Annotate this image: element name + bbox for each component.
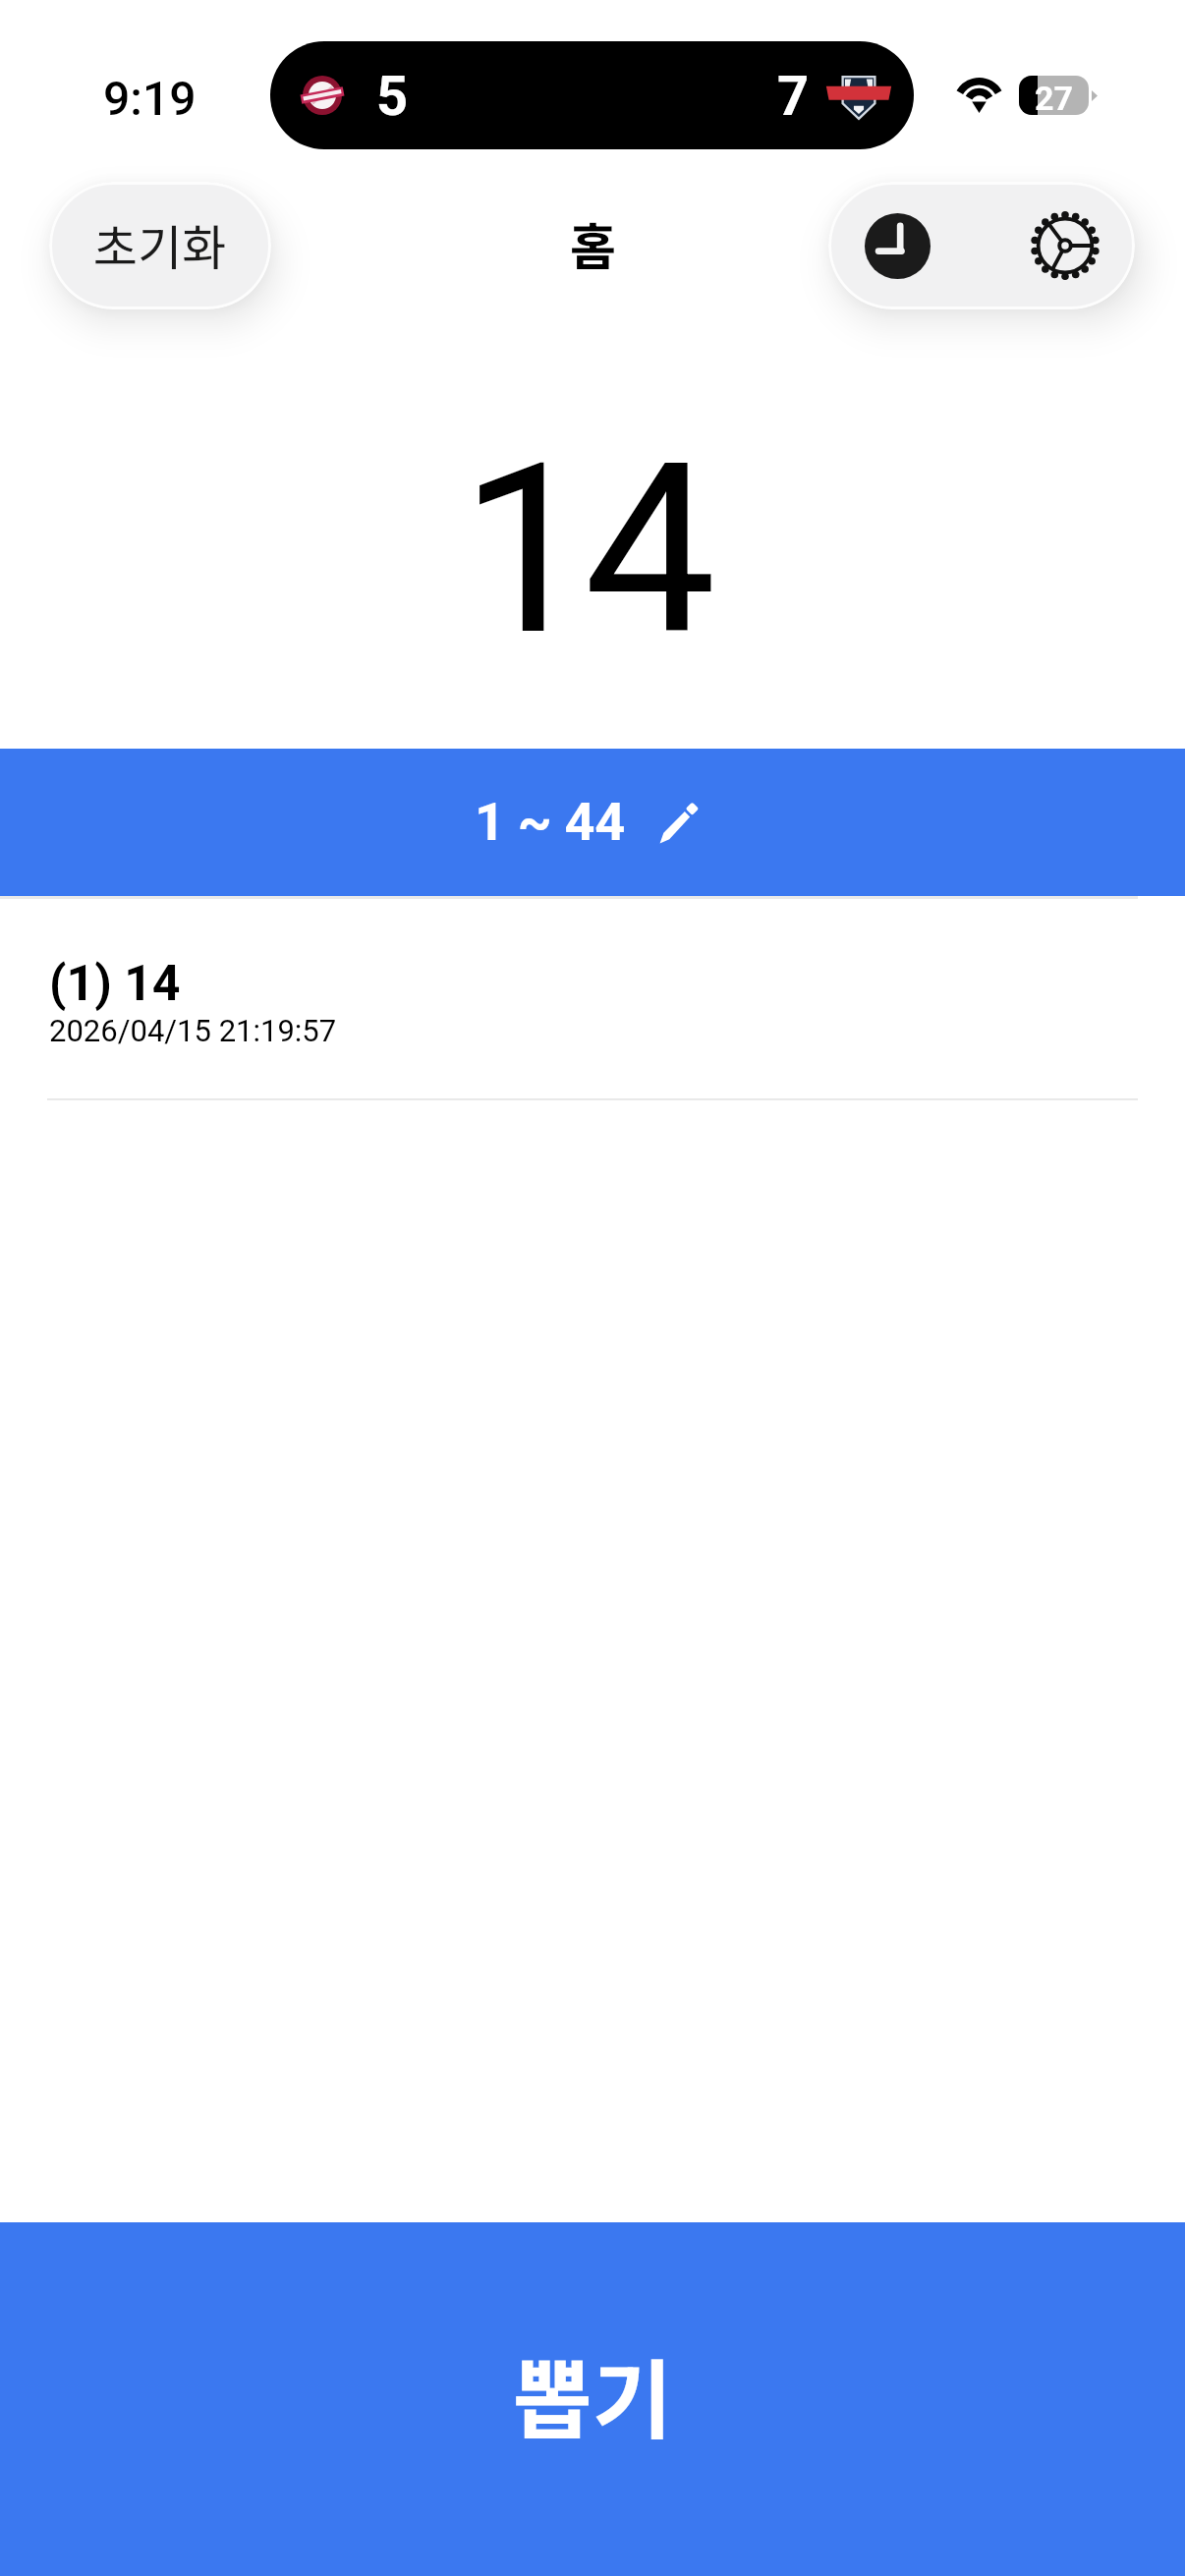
button[interactable]: 초기화 — [49, 182, 271, 309]
button[interactable]: (1) 14 — [0, 896, 1185, 1098]
button[interactable]: History — [828, 182, 966, 309]
staticText: 1 ~ 44 — [475, 791, 625, 853]
staticText: 초기화 — [93, 209, 227, 279]
staticText: 2026/04/15 21:19:57 — [49, 1013, 337, 1048]
button[interactable]: 뽑기 — [0, 2222, 1185, 2576]
button[interactable]: 1 ~ 44 — [0, 749, 1185, 896]
staticText: 뽑기 — [513, 2331, 672, 2456]
staticText: 5 — [376, 64, 409, 129]
staticText: 7 — [777, 64, 810, 129]
staticText: (1) 14 — [49, 955, 181, 1013]
staticText: 14 — [460, 412, 707, 688]
staticText: 27 — [1035, 79, 1074, 118]
button[interactable]: Settings — [996, 182, 1134, 309]
staticText: 9:19 — [103, 71, 197, 126]
staticText: 홈 — [570, 207, 616, 280]
